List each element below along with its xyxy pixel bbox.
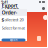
staticText: Orders [5,6,19,11]
staticText: ‹ [1,4,3,13]
button[interactable]: Back [1,4,3,13]
button[interactable]: Profile [43,15,48,20]
staticText: Select format [1,25,24,30]
staticText: Export Orders [1,2,17,23]
button[interactable]: Export [1,39,25,42]
staticText: 9:41 [1,0,8,5]
staticText: Collected: 20 [1,17,23,22]
staticText: Export [9,38,17,42]
button[interactable]: Search [42,7,45,10]
button[interactable]: Add [37,36,41,41]
